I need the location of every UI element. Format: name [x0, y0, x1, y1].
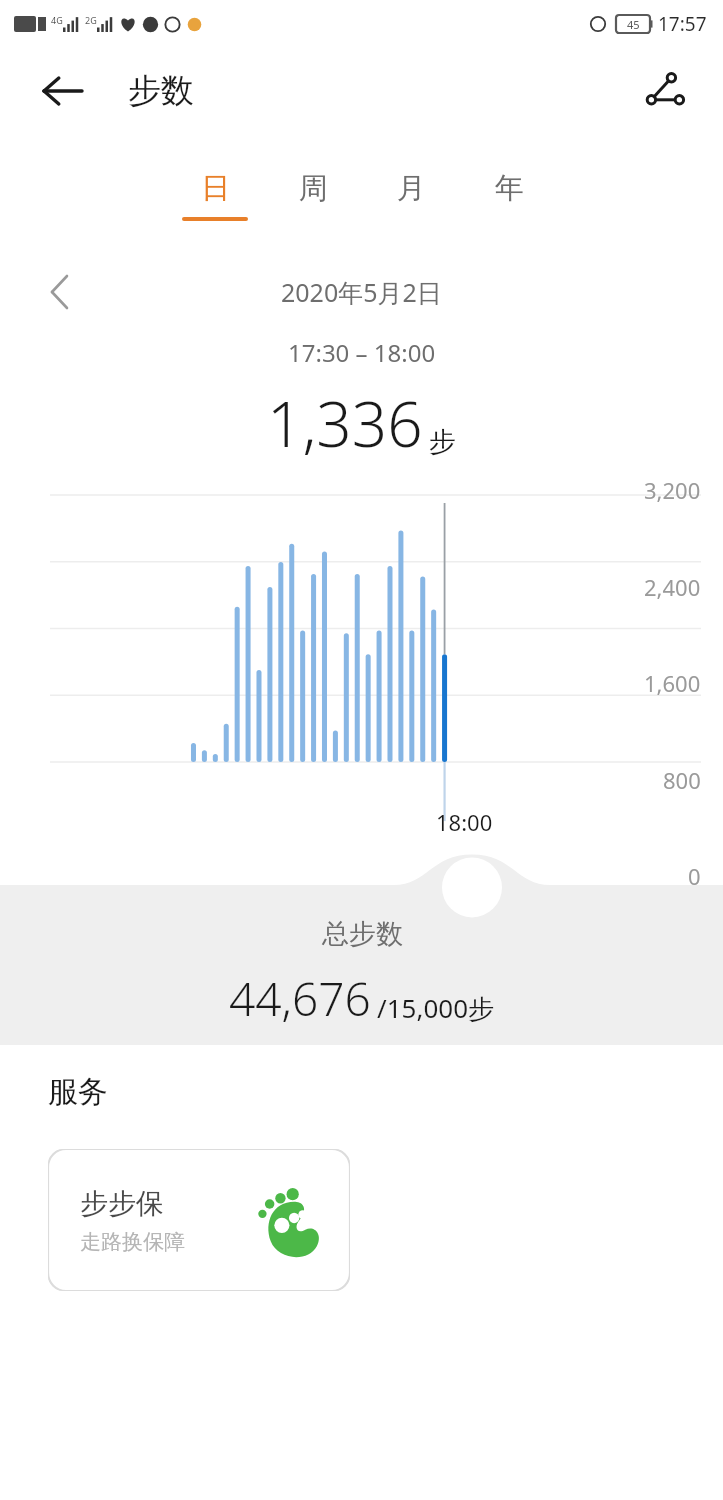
staticText: 45 — [627, 17, 640, 32]
button[interactable]: 步步保 — [48, 1149, 350, 1291]
staticText: 1,336 — [267, 381, 423, 465]
button[interactable]: Back — [36, 65, 88, 117]
staticText: 17:57 — [658, 11, 707, 37]
staticText: 1,600 — [644, 668, 701, 698]
staticText: 步数 — [128, 70, 194, 112]
staticText: 44,676 — [229, 967, 371, 1030]
staticText: 服务 — [48, 1073, 108, 1111]
staticText: 走路换保障 — [80, 1229, 185, 1255]
button[interactable]: 周 — [264, 170, 362, 242]
staticText: 3,200 — [644, 475, 701, 505]
staticText: 800 — [663, 765, 701, 795]
staticText: 17:30 – 18:00 — [288, 336, 436, 369]
button[interactable]: 日 — [166, 170, 264, 242]
staticText: 日 — [201, 170, 230, 207]
staticText: /15,000步 — [377, 990, 495, 1026]
button[interactable]: 年 — [460, 170, 558, 242]
staticText: 月 — [397, 170, 426, 207]
staticText: 周 — [299, 170, 328, 207]
staticText: 2G — [85, 14, 97, 26]
staticText: 18:00 — [436, 807, 493, 837]
button[interactable]: 月 — [362, 170, 460, 242]
staticText: 年 — [495, 170, 524, 207]
staticText: 步 — [429, 425, 456, 459]
staticText: 步步保 — [80, 1186, 164, 1221]
button[interactable]: Previous day — [36, 270, 84, 314]
button[interactable]: Share — [637, 63, 693, 119]
staticText: 0 — [688, 861, 701, 891]
staticText: 2,400 — [644, 572, 701, 602]
staticText: 4G — [51, 14, 63, 26]
staticText: 2020年5月2日 — [281, 275, 442, 309]
staticText: 总步数 — [322, 917, 403, 951]
